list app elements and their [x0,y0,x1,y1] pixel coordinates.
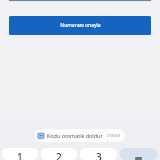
button[interactable] [9,0,151,2]
staticText: 1 [17,150,23,160]
other: SMS autofill [37,132,45,140]
button[interactable]: 3 [80,148,117,160]
button[interactable]: 2 [41,148,77,160]
staticText: 3 [96,150,102,160]
staticText: mesaj... [107,131,121,142]
staticText: Numaranı onayla [60,22,101,29]
button[interactable]: Numaranı onayla [9,16,151,35]
staticText: 2 [56,150,62,160]
button[interactable]: Backspace [120,148,157,160]
button[interactable]: 1 [2,148,38,160]
button[interactable]: SMS autofill [37,129,121,142]
staticText: Kodu otomatik doldur [47,132,103,139]
